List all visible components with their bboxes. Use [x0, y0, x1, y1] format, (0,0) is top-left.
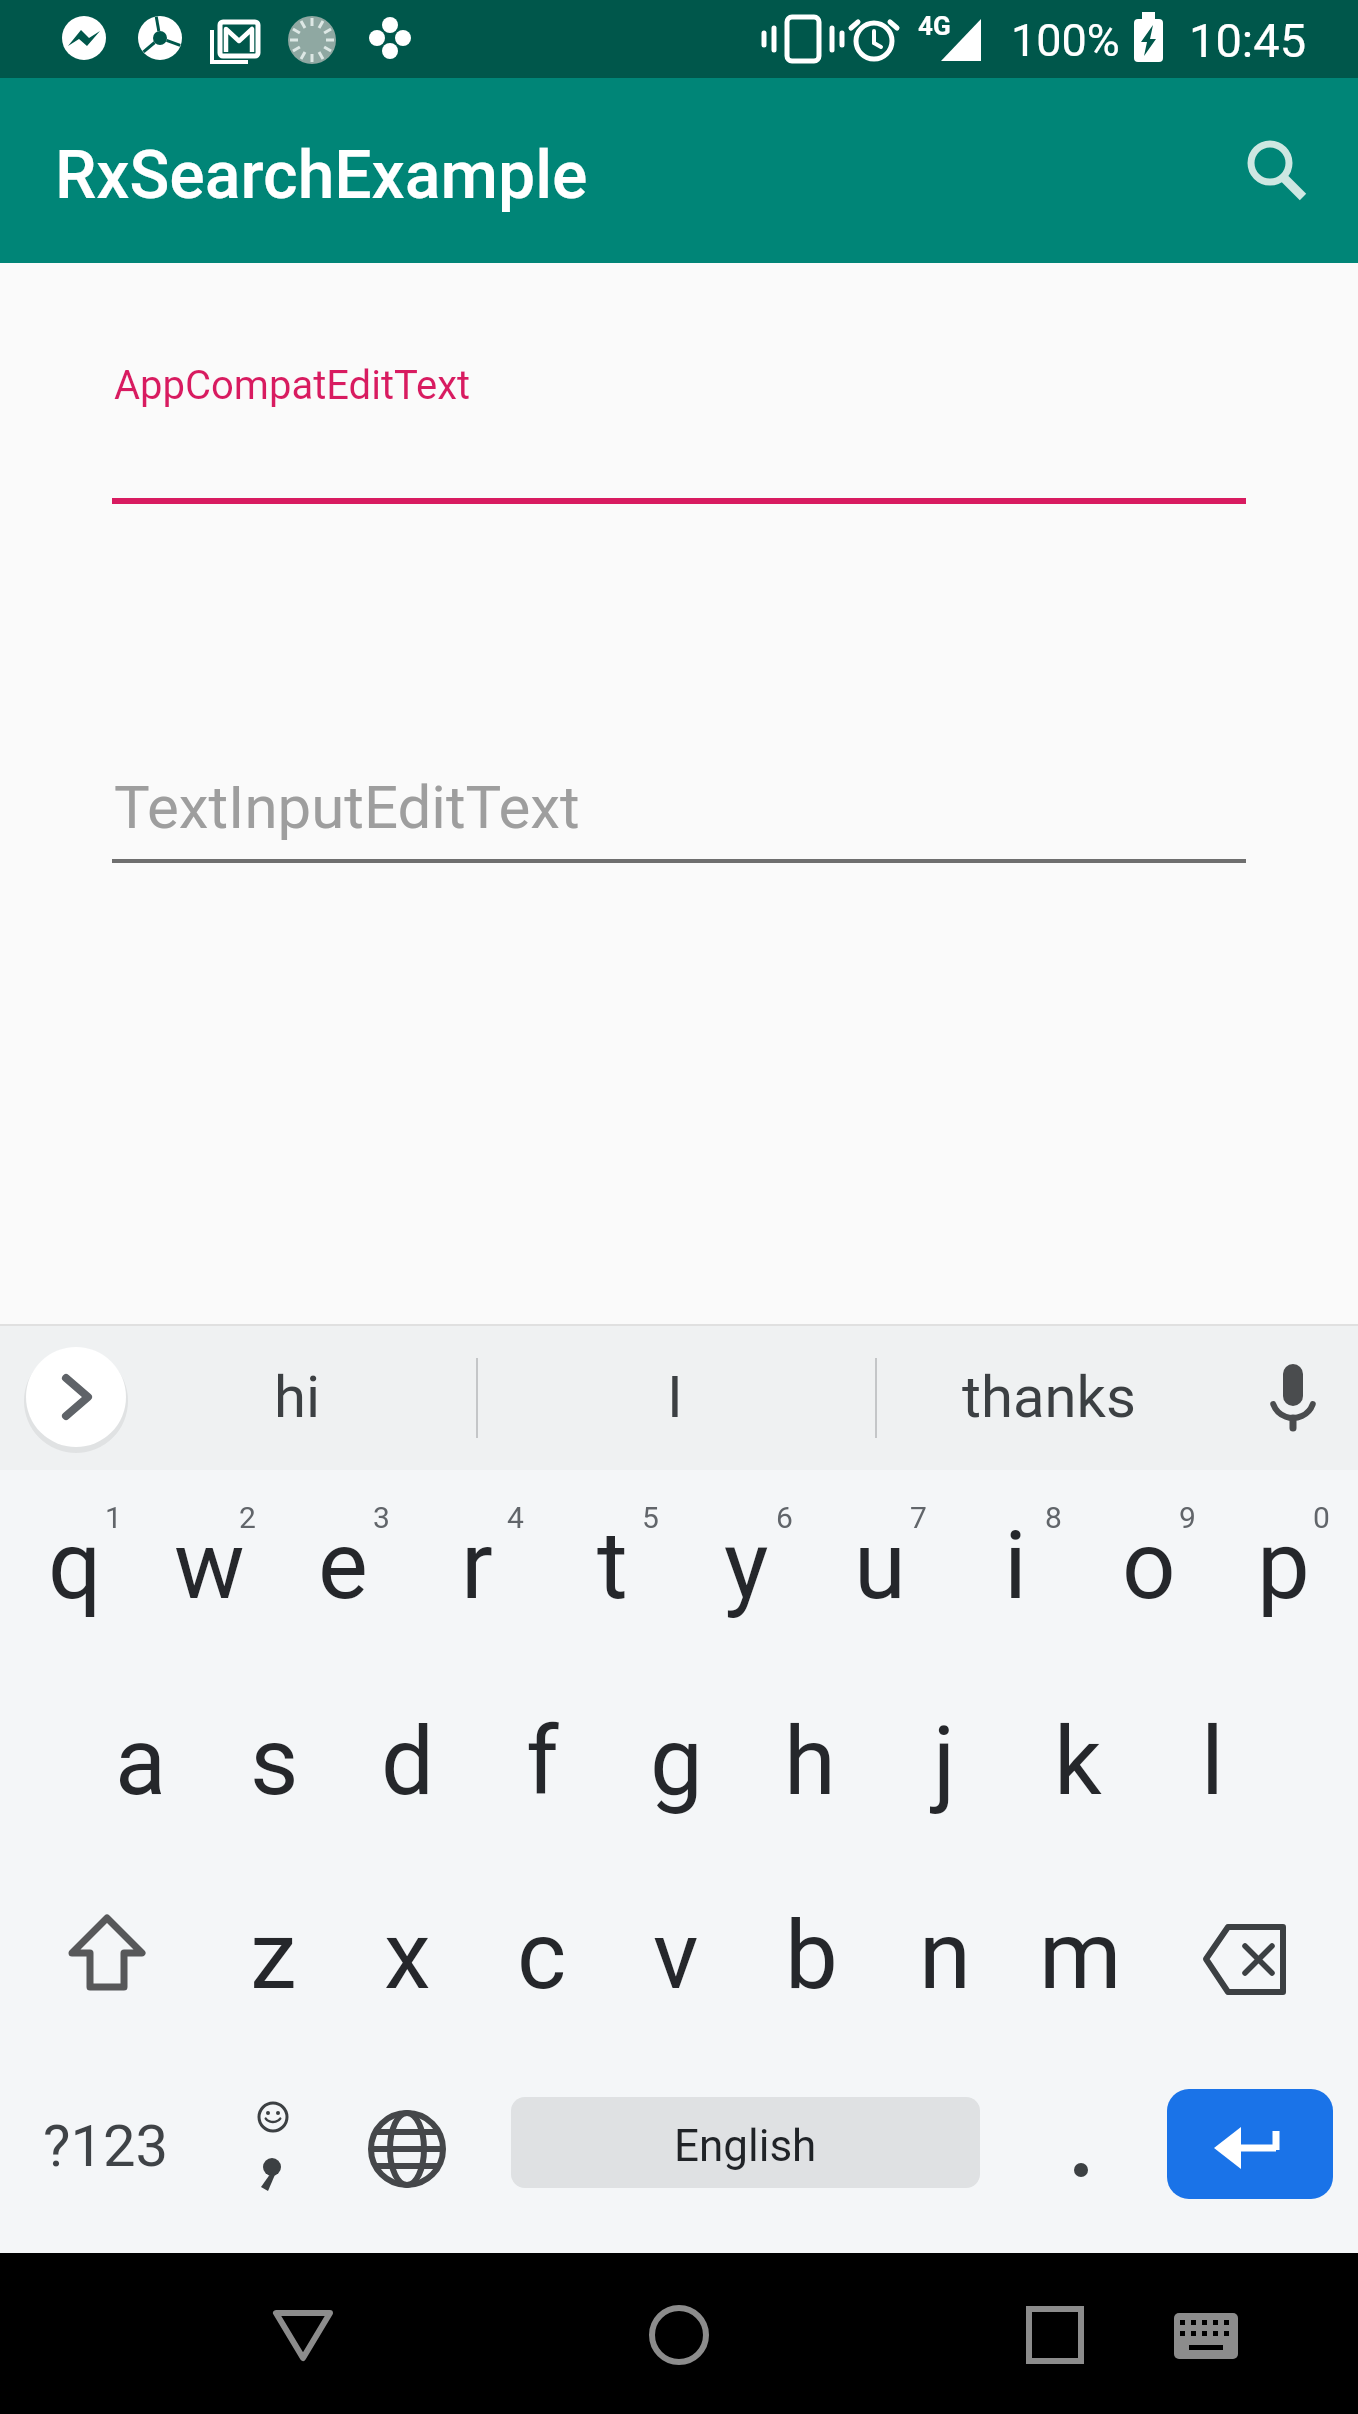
button[interactable]: x — [340, 1861, 474, 2051]
staticText: m — [1039, 1901, 1122, 2011]
staticText: q — [48, 1511, 102, 1621]
button[interactable]: thanks — [839, 1327, 1259, 1467]
staticText: RxSearchExample — [55, 137, 588, 214]
staticText: y — [724, 1511, 769, 1621]
staticText: k — [1054, 1707, 1102, 1817]
staticText: w — [174, 1511, 245, 1621]
button[interactable]: o — [1082, 1471, 1216, 1661]
button[interactable] — [609, 2265, 749, 2405]
staticText: z — [250, 1901, 297, 2011]
staticText: v — [653, 1901, 699, 2011]
staticText: English — [674, 2120, 817, 2172]
staticText: o — [1122, 1511, 1176, 1621]
staticText: f — [526, 1707, 559, 1817]
button[interactable]: f — [475, 1667, 609, 1857]
staticText: p — [1257, 1511, 1310, 1621]
button[interactable] — [1253, 1352, 1333, 1442]
staticText: a — [115, 1707, 167, 1817]
button[interactable]: u — [813, 1471, 947, 1661]
button[interactable]: English — [511, 2097, 980, 2188]
staticText: 5 — [642, 1500, 659, 1535]
button[interactable]: z — [206, 1861, 340, 2051]
staticText: j — [933, 1707, 956, 1817]
staticText: hi — [274, 1363, 321, 1431]
button[interactable] — [40, 1890, 174, 2026]
button[interactable]: b — [744, 1861, 878, 2051]
button[interactable]: r — [410, 1471, 544, 1661]
button[interactable]: i — [948, 1471, 1082, 1661]
staticText: 0 — [1313, 1500, 1330, 1535]
button[interactable]: c — [475, 1861, 609, 2051]
button[interactable]: hi — [87, 1327, 507, 1467]
staticText: 2 — [239, 1500, 256, 1535]
staticText: AppCompatEditText — [114, 362, 471, 409]
staticText: 10:45 — [1189, 13, 1307, 68]
staticText: I — [667, 1363, 683, 1431]
staticText: thanks — [962, 1363, 1136, 1431]
button[interactable]: v — [609, 1861, 743, 2051]
button[interactable]: e — [276, 1471, 410, 1661]
button[interactable]: l — [1145, 1667, 1279, 1857]
staticText: 7 — [910, 1500, 927, 1535]
staticText: c — [517, 1901, 567, 2011]
button[interactable]: ?123 — [0, 2081, 216, 2211]
staticText: n — [919, 1901, 971, 2011]
button[interactable]: I — [465, 1327, 885, 1467]
staticText: 6 — [776, 1500, 793, 1535]
staticText: 4 — [507, 1500, 524, 1535]
staticText: u — [854, 1511, 906, 1621]
button[interactable] — [1167, 2089, 1333, 2199]
staticText: r — [461, 1511, 493, 1621]
button[interactable] — [207, 2080, 341, 2216]
staticText: 1 — [105, 1500, 122, 1535]
button[interactable]: g — [609, 1667, 743, 1857]
button[interactable] — [233, 2265, 373, 2405]
staticText: g — [650, 1707, 703, 1817]
button[interactable]: a — [74, 1667, 208, 1857]
button[interactable] — [985, 2265, 1125, 2405]
staticText: h — [784, 1707, 836, 1817]
button[interactable]: y — [679, 1471, 813, 1661]
button[interactable] — [1014, 2080, 1148, 2216]
button[interactable]: k — [1011, 1667, 1145, 1857]
button[interactable] — [1215, 110, 1335, 230]
staticText: ?123 — [43, 2112, 169, 2180]
staticText: t — [597, 1511, 628, 1621]
button[interactable] — [340, 2080, 474, 2216]
staticText: 100% — [1011, 14, 1120, 67]
button[interactable] — [1145, 2265, 1285, 2405]
staticText: b — [785, 1901, 838, 2011]
staticText: i — [1004, 1511, 1027, 1621]
staticText: l — [1201, 1707, 1224, 1817]
button[interactable]: n — [878, 1861, 1012, 2051]
button[interactable]: h — [743, 1667, 877, 1857]
staticText: 9 — [1179, 1500, 1196, 1535]
button[interactable] — [26, 1347, 126, 1447]
button[interactable] — [1180, 1890, 1314, 2026]
button[interactable]: s — [207, 1667, 341, 1857]
button[interactable]: d — [341, 1667, 475, 1857]
button[interactable]: p — [1216, 1471, 1350, 1661]
staticText: x — [384, 1901, 431, 2011]
button[interactable]: w — [142, 1471, 276, 1661]
button[interactable]: j — [877, 1667, 1011, 1857]
staticText: 3 — [373, 1500, 390, 1535]
staticText: e — [318, 1511, 368, 1621]
staticText: TextInputEditText — [114, 772, 580, 842]
staticText: d — [381, 1707, 435, 1817]
button[interactable]: m — [1013, 1861, 1147, 2051]
staticText: 8 — [1045, 1500, 1062, 1535]
staticText: s — [250, 1707, 299, 1817]
button[interactable]: t — [545, 1471, 679, 1661]
button[interactable]: q — [8, 1471, 142, 1661]
staticText: 4G — [918, 11, 951, 41]
